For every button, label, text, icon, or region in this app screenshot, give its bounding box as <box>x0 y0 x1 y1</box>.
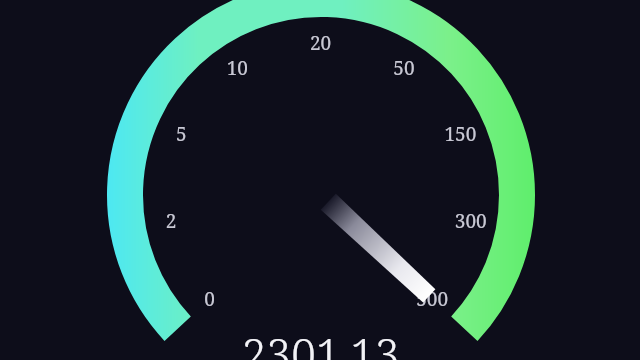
button[interactable]: Speed test gauge, 2301.13 <box>0 0 640 360</box>
